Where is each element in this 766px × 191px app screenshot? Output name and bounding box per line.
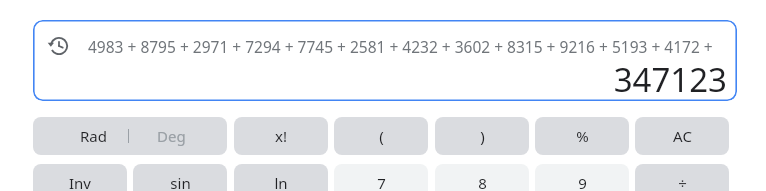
staticText: x! [275,126,287,146]
button[interactable]: 7 [334,164,428,191]
button[interactable]: x! [234,117,328,155]
staticText: sin [170,173,191,191]
staticText: Deg [157,126,186,146]
staticText: Inv [69,173,91,191]
button[interactable]: sin [133,164,227,191]
button[interactable]: ( [334,117,428,155]
staticText: ) [480,126,485,146]
staticText: 7 [377,173,386,191]
button[interactable]: % [535,117,629,155]
button[interactable]: History [48,35,70,57]
staticText: 347123 [613,57,727,97]
button[interactable]: Rad [33,117,227,155]
staticText: ln [274,173,288,191]
button[interactable]: Inv [33,164,127,191]
staticText: AC [673,126,692,146]
staticText: 8 [478,173,487,191]
staticText: ÷ [678,173,687,191]
staticText: 9 [578,173,587,191]
button[interactable] [33,20,737,101]
button[interactable]: 9 [535,164,629,191]
staticText: ( [379,126,384,146]
button[interactable]: ln [234,164,328,191]
button[interactable]: ) [435,117,529,155]
staticText: Rad [80,126,107,146]
staticText: 4983 + 8795 + 2971 + 7294 + 7745 + 2581 … [88,36,730,57]
button[interactable]: AC [635,117,729,155]
staticText: % [576,126,589,146]
button[interactable]: 8 [435,164,529,191]
button[interactable]: ÷ [635,164,729,191]
